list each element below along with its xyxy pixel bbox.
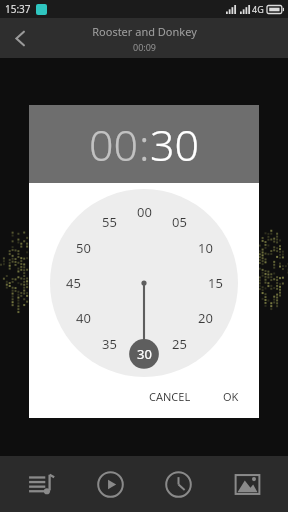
staticText: 35 <box>102 335 117 353</box>
staticText: 10 <box>198 239 213 257</box>
button[interactable]: 30 <box>150 115 200 174</box>
staticText: Rooster and Donkey <box>92 24 197 39</box>
staticText: 30 <box>137 345 152 363</box>
staticText: 40 <box>76 309 91 327</box>
staticText: 00 <box>137 203 152 221</box>
staticText: 05 <box>172 213 187 231</box>
staticText: 15 <box>208 274 223 292</box>
staticText: : <box>139 115 150 174</box>
button[interactable]: OK <box>213 383 249 410</box>
button[interactable]: Back <box>0 18 40 58</box>
staticText: 15:37 <box>5 2 31 16</box>
staticText: 00:09 <box>133 41 157 53</box>
button[interactable]: Playlist <box>13 456 69 512</box>
staticText: OK <box>223 389 239 404</box>
button[interactable]: 00 <box>89 115 139 174</box>
button[interactable]: Timer <box>150 456 206 512</box>
button[interactable]: Play <box>82 456 138 512</box>
staticText: 20 <box>198 309 213 327</box>
staticText: CANCEL <box>149 389 191 404</box>
staticText: 25 <box>172 335 187 353</box>
staticText: 4G <box>252 3 264 15</box>
button[interactable]: Gallery <box>219 456 275 512</box>
staticText: 55 <box>102 213 117 231</box>
button[interactable]: CANCEL <box>139 383 201 410</box>
staticText: 45 <box>66 274 81 292</box>
staticText: 50 <box>76 239 91 257</box>
